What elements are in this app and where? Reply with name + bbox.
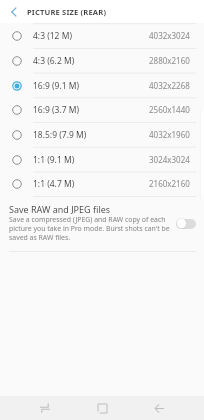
staticText: 16:9 (9.1 M): [33, 80, 80, 92]
staticText: 3024x3024: [149, 154, 190, 165]
staticText: Save RAW and JPEG files: [9, 203, 111, 215]
staticText: 1:1 (4.7 M): [33, 178, 75, 190]
staticText: 2880x2160: [149, 55, 190, 66]
button[interactable]: 16:9 (9.1 M): [0, 73, 204, 98]
staticText: 4:3 (12 M): [33, 30, 72, 42]
staticText: Save a compressed (JPEG) and RAW copy of…: [9, 215, 171, 242]
staticText: 16:9 (3.7 M): [33, 104, 80, 116]
button[interactable]: 4:3 (6.2 M): [0, 48, 204, 73]
staticText: 2160x2160: [149, 178, 190, 189]
staticText: 18.5:9 (7.9 M): [33, 129, 87, 141]
button[interactable]: Back: [0, 0, 23, 23]
staticText: 4032x1960: [149, 129, 190, 140]
staticText: PICTURE SIZE (REAR): [27, 7, 107, 17]
button[interactable]: Home: [92, 398, 112, 418]
button[interactable]: Save RAW and JPEG files: [0, 196, 204, 251]
button[interactable]: 16:9 (3.7 M): [0, 97, 204, 122]
button[interactable]: 18.5:9 (7.9 M): [0, 122, 204, 147]
button[interactable]: Back: [149, 398, 169, 418]
staticText: 2560x1440: [149, 104, 190, 115]
button[interactable]: 1:1 (4.7 M): [0, 171, 204, 196]
staticText: 4032x3024: [149, 30, 190, 41]
button[interactable]: 1:1 (9.1 M): [0, 147, 204, 172]
button[interactable]: 4:3 (12 M): [0, 23, 204, 48]
staticText: 4:3 (6.2 M): [33, 55, 75, 67]
staticText: 4032x2268: [149, 80, 190, 91]
staticText: 1:1 (9.1 M): [33, 154, 75, 166]
button[interactable]: Recent apps: [35, 398, 55, 418]
